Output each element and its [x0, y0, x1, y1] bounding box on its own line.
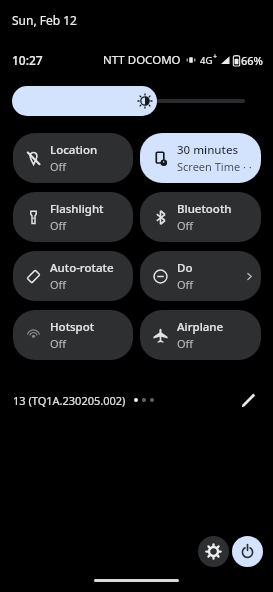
- button[interactable]: Auto-rotate: [13, 251, 133, 301]
- staticText: +: [213, 52, 218, 62]
- staticText: Bluetooth: [177, 201, 232, 217]
- staticText: Off: [50, 336, 67, 351]
- staticText: Off: [177, 218, 194, 233]
- button[interactable]: 30 minutes: [140, 133, 261, 183]
- staticText: 66%: [241, 53, 263, 68]
- button[interactable]: Edit tiles: [236, 388, 260, 412]
- staticText: Do Not Di· ·: [177, 260, 210, 276]
- button[interactable]: Do Not Di· ·: [140, 251, 261, 301]
- staticText: Flashlight: [50, 201, 104, 217]
- button[interactable]: Airplane mode: [140, 310, 261, 360]
- staticText: Auto-rotate: [50, 260, 114, 276]
- button[interactable]: [12, 86, 245, 116]
- staticText: Off: [177, 336, 194, 351]
- staticText: Sun, Feb 12: [12, 12, 77, 28]
- staticText: 10:27: [12, 52, 43, 68]
- staticText: Off: [50, 218, 67, 233]
- button[interactable]: Location: [13, 133, 133, 183]
- button[interactable]: Power: [232, 536, 263, 567]
- button[interactable]: Settings: [198, 536, 229, 567]
- staticText: Off: [50, 159, 67, 174]
- staticText: Screen Time · ·: [177, 159, 252, 174]
- staticText: Off: [50, 277, 67, 292]
- staticText: Off: [177, 277, 194, 292]
- button[interactable]: Hotspot: [13, 310, 133, 360]
- staticText: Hotspot: [50, 319, 95, 335]
- staticText: 4G: [200, 54, 213, 67]
- staticText: Location: [50, 142, 98, 158]
- staticText: Airplane mode: [177, 319, 255, 335]
- button[interactable]: Bluetooth: [140, 192, 261, 242]
- staticText: 30 minutes: [177, 142, 239, 158]
- button[interactable]: Flashlight: [13, 192, 133, 242]
- staticText: 13 (TQ1A.230205.002): [13, 393, 126, 408]
- staticText: NTT DOCOMO: [103, 52, 181, 68]
